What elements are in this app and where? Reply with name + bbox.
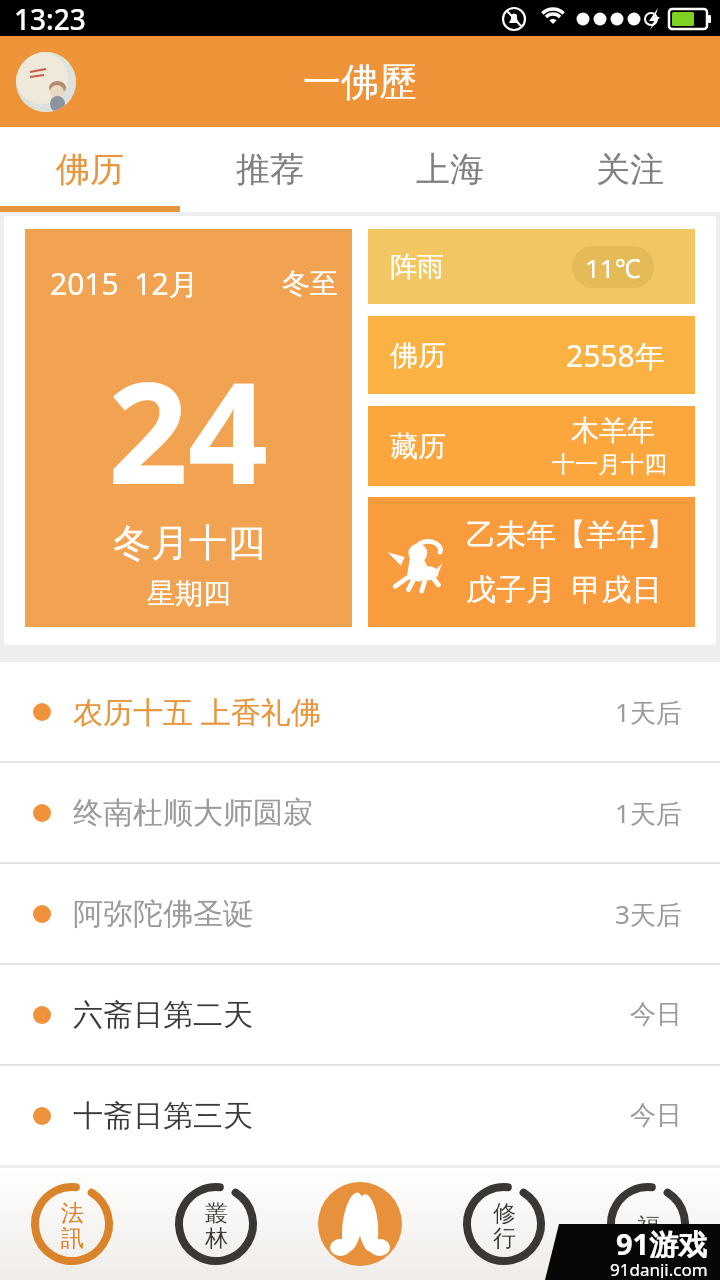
staticText: 乙未年【羊年】 [466, 516, 676, 554]
staticText: 叢 [205, 1199, 228, 1224]
staticText: 十一月十四 [552, 450, 667, 479]
staticText: 今日 [630, 1099, 682, 1132]
button[interactable]: 农历十五 上香礼佛 [0, 662, 720, 761]
staticText: 法 [61, 1199, 84, 1224]
staticText: 2558年 [566, 335, 665, 376]
button[interactable]: 上海 [360, 127, 540, 212]
staticText: 1天后 [615, 694, 682, 730]
staticText: 24 [108, 334, 269, 525]
staticText: 藏历 [390, 429, 446, 464]
button[interactable] [318, 1182, 402, 1266]
staticText: 阵雨 [390, 250, 444, 284]
staticText: 佛历 [56, 148, 124, 191]
staticText: 1天后 [615, 795, 682, 831]
staticText: 冬至 [282, 266, 338, 301]
button[interactable]: 阿弥陀佛圣诞 [0, 864, 720, 963]
button[interactable]: 推荐 [180, 127, 360, 212]
staticText: 关注 [596, 148, 664, 191]
staticText: 林 [205, 1224, 228, 1249]
staticText: 2015 12月 [50, 263, 199, 304]
button[interactable]: 叢 [174, 1182, 258, 1266]
staticText: 推荐 [236, 148, 304, 191]
staticText: 终南杜顺大师圆寂 [73, 794, 313, 832]
staticText: 戊子月 甲戌日 [466, 568, 662, 609]
button[interactable]: 阵雨 [368, 229, 695, 304]
staticText: 今日 [630, 998, 682, 1031]
staticText: 13:23 [14, 0, 86, 36]
button[interactable]: 福 [606, 1182, 690, 1266]
button[interactable]: 藏历 [368, 406, 695, 486]
staticText: 行 [493, 1224, 516, 1249]
staticText: 上海 [416, 148, 484, 191]
staticText: 一佛歷 [303, 58, 417, 106]
staticText: 佛历 [390, 338, 446, 373]
button[interactable] [16, 52, 76, 112]
staticText: 91游戏 [616, 1224, 708, 1258]
staticText: 十斋日第三天 [73, 1097, 253, 1135]
button[interactable]: 法 [30, 1182, 114, 1266]
staticText: 91danji.com [610, 1258, 708, 1278]
button[interactable]: 关注 [540, 127, 720, 212]
staticText: 修 [493, 1199, 516, 1224]
staticText: 星期四 [147, 576, 231, 611]
button[interactable]: 十斋日第三天 [0, 1066, 720, 1165]
staticText: 11℃ [585, 250, 641, 285]
staticText: 农历十五 上香礼佛 [73, 691, 321, 732]
staticText: 木羊年 [571, 413, 655, 448]
button[interactable]: 佛历 [368, 316, 695, 394]
staticText: 訊 [61, 1224, 84, 1249]
staticText: 阿弥陀佛圣诞 [73, 895, 253, 933]
staticText: 福 [637, 1212, 660, 1237]
staticText: 3天后 [615, 896, 682, 932]
button[interactable]: 乙未年【羊年】 [368, 497, 695, 627]
button[interactable]: 六斋日第二天 [0, 965, 720, 1064]
staticText: 六斋日第二天 [73, 996, 253, 1034]
button[interactable]: 终南杜顺大师圆寂 [0, 763, 720, 862]
button[interactable]: 修 [462, 1182, 546, 1266]
staticText: 冬月十四 [113, 519, 265, 567]
button[interactable]: 2015 12月 [25, 229, 352, 627]
button[interactable]: 佛历 [0, 127, 180, 212]
